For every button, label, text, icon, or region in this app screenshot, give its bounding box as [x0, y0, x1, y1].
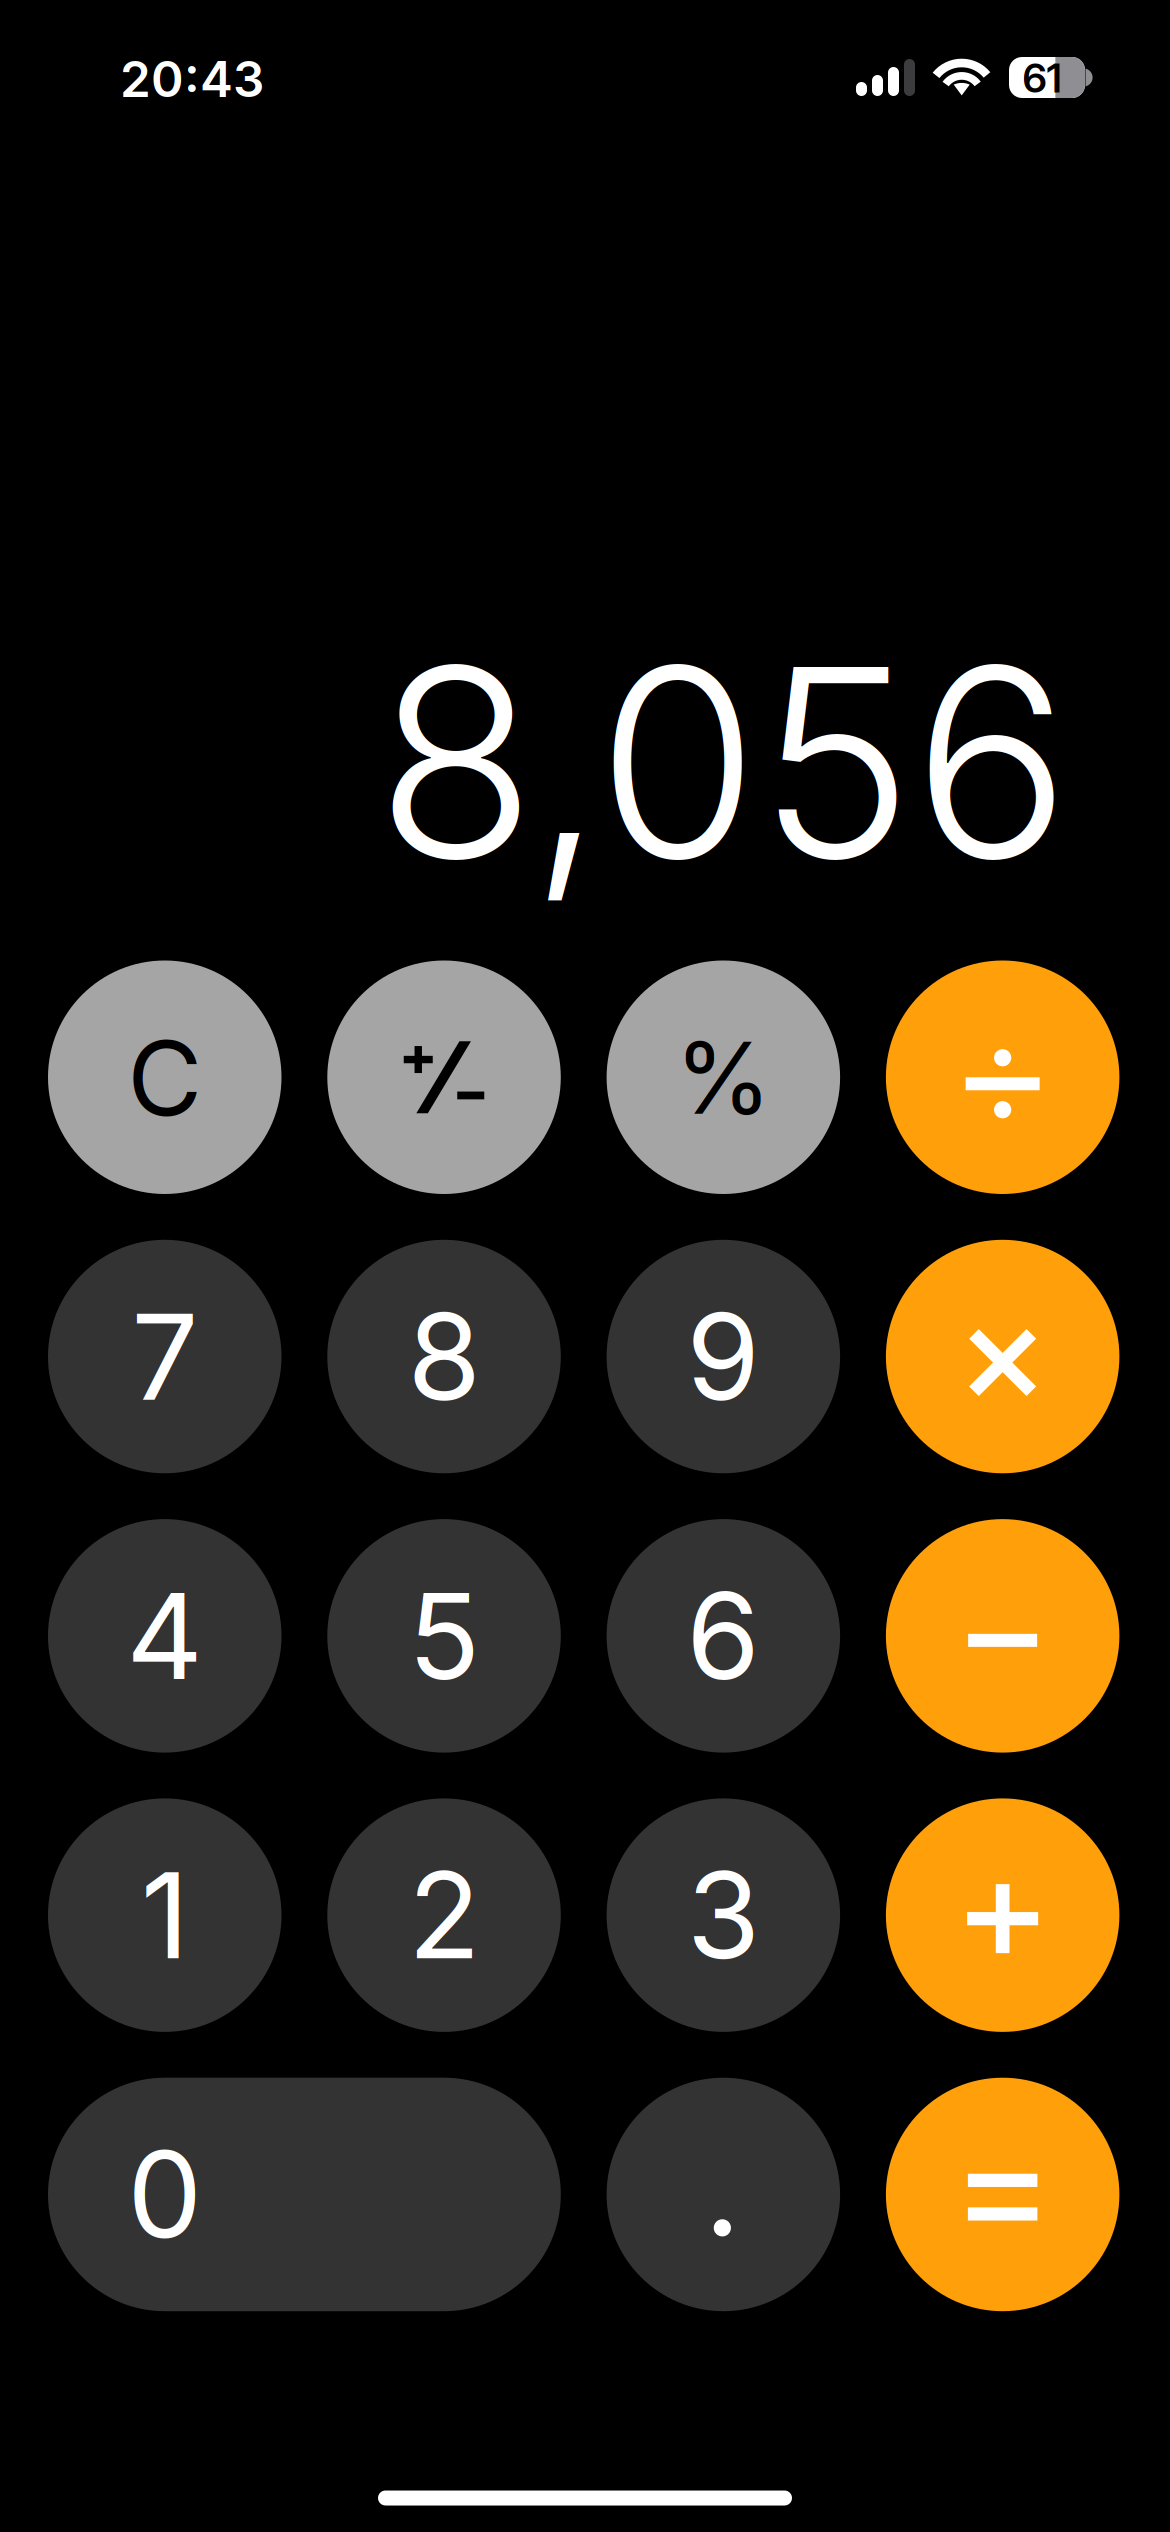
staticText: 7 — [131, 1285, 198, 1428]
button[interactable]: Percent — [607, 960, 840, 1194]
staticText: 8 — [408, 1285, 481, 1428]
button[interactable]: 6 — [607, 1519, 840, 1753]
button[interactable]: 5 — [327, 1519, 561, 1753]
button[interactable]: 3 — [607, 1798, 840, 2032]
staticText: 4 — [126, 1564, 203, 1708]
staticText: 3 — [687, 1843, 760, 1987]
button[interactable]: 4 — [48, 1519, 281, 1753]
staticText: 5 — [408, 1564, 480, 1708]
button[interactable]: Plus — [886, 1798, 1119, 2032]
staticText: 8,056 — [376, 604, 1070, 920]
button[interactable]: 2 — [327, 1798, 561, 2032]
button[interactable]: Minus — [886, 1519, 1119, 1753]
button[interactable]: Clear — [48, 960, 281, 1194]
staticText: 1 — [141, 1843, 189, 1987]
staticText: 20:43 — [120, 49, 264, 109]
button[interactable]: 8 — [327, 1240, 561, 1473]
staticText: 61 — [1022, 54, 1061, 102]
button[interactable]: Multiply — [886, 1240, 1119, 1473]
staticText: 2 — [408, 1843, 480, 1987]
button[interactable]: Decimal point — [607, 2078, 840, 2311]
staticText: 0 — [127, 2123, 202, 2266]
button[interactable]: 1 — [48, 1798, 281, 2032]
staticText: C — [127, 1016, 202, 1140]
staticText: 9 — [686, 1285, 760, 1428]
button[interactable]: 7 — [48, 1240, 281, 1473]
button[interactable]: Divide — [886, 960, 1119, 1194]
staticText: % — [675, 1018, 772, 1137]
staticText: 6 — [686, 1564, 760, 1708]
button[interactable]: 9 — [607, 1240, 840, 1473]
button[interactable]: Equals — [886, 2078, 1119, 2311]
button[interactable]: Plus minus — [327, 960, 561, 1194]
button[interactable]: 0 — [48, 2078, 561, 2311]
